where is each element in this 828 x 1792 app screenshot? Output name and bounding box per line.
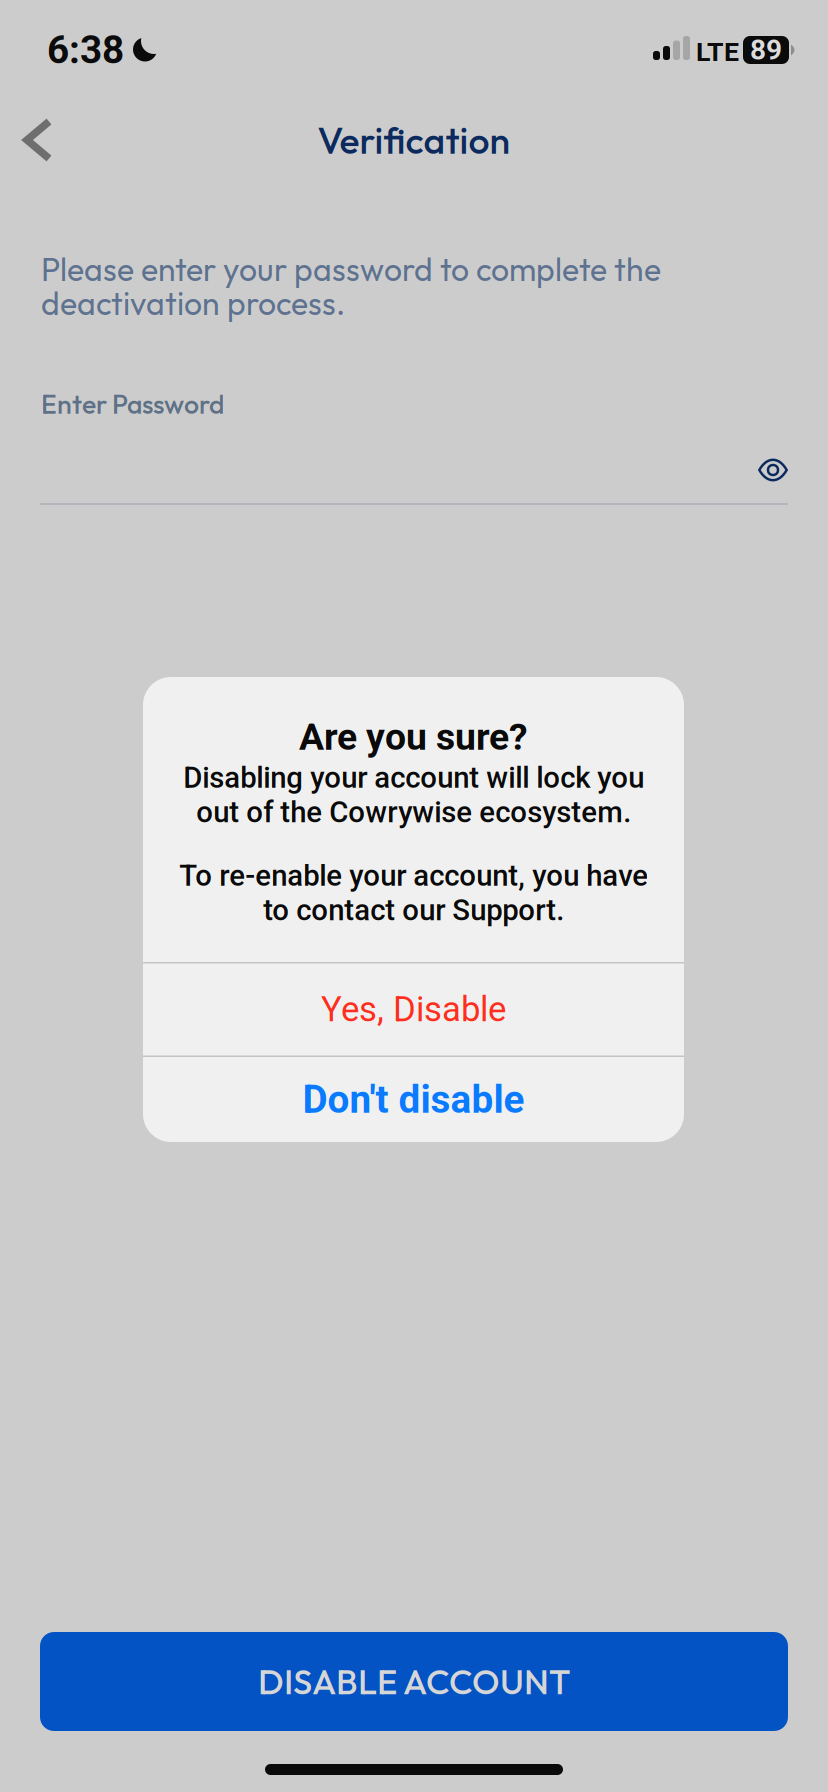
- button[interactable]: Yes, Disable: [143, 963, 684, 1055]
- button[interactable]: DISABLE ACCOUNT: [40, 1632, 788, 1731]
- staticText: Don't disable: [302, 1077, 524, 1122]
- staticText: To re-enable your account, you have to c…: [179, 859, 648, 927]
- staticText: Enter Password: [41, 387, 224, 421]
- staticText: Disabling your account will lock you out…: [183, 761, 644, 829]
- staticText: deactivation process.: [41, 283, 345, 323]
- staticText: Are you sure?: [299, 715, 528, 759]
- button[interactable]: Show password: [747, 444, 799, 496]
- staticText: LTE: [696, 36, 739, 68]
- staticText: DISABLE ACCOUNT: [258, 1660, 570, 1703]
- staticText: Verification: [317, 116, 510, 163]
- staticText: Please enter your password to complete t…: [41, 249, 661, 289]
- button[interactable]: Back: [5, 107, 71, 173]
- staticText: 6:38: [47, 27, 124, 73]
- staticText: 89: [750, 34, 782, 66]
- button[interactable]: Don't disable: [143, 1057, 684, 1142]
- staticText: Yes, Disable: [321, 989, 506, 1030]
